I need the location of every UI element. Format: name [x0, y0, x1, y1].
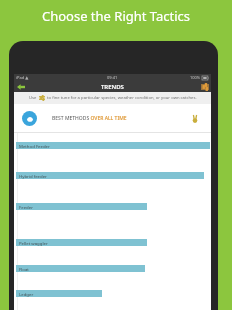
- staticText: Feeder: [19, 204, 33, 210]
- button[interactable]: BEST METHODS OVER ALL TIME: [14, 104, 211, 133]
- button[interactable]: Back: [14, 82, 28, 92]
- staticText: Pellet waggler: [19, 240, 48, 246]
- staticText: Float: [19, 266, 29, 272]
- button[interactable]: Hybrid feeder: [16, 172, 204, 179]
- staticText: Hybrid feeder: [19, 173, 47, 179]
- button[interactable]: Feeder: [16, 203, 147, 210]
- button[interactable]: Pellet waggler: [16, 239, 147, 246]
- button[interactable]: Ledger: [16, 290, 102, 297]
- staticText: Choose the Right Tactics: [0, 7, 232, 25]
- staticText: BEST METHODS OVER ALL TIME: [52, 115, 127, 122]
- staticText: Method Feeder: [19, 143, 50, 149]
- staticText: to fine tune for a particular species, w…: [47, 95, 197, 101]
- staticText: Ledger: [19, 291, 34, 297]
- staticText: 100%: [190, 75, 201, 80]
- button[interactable]: Float: [16, 265, 145, 272]
- staticText: 09:41: [107, 75, 118, 80]
- button[interactable]: Filter settings: [199, 82, 211, 92]
- staticText: Use: [29, 95, 37, 101]
- staticText: TRENDS: [101, 83, 124, 91]
- staticText: iPad ▲: [16, 75, 29, 80]
- button[interactable]: Method Feeder: [16, 142, 210, 149]
- button[interactable]: Top results: [189, 113, 201, 125]
